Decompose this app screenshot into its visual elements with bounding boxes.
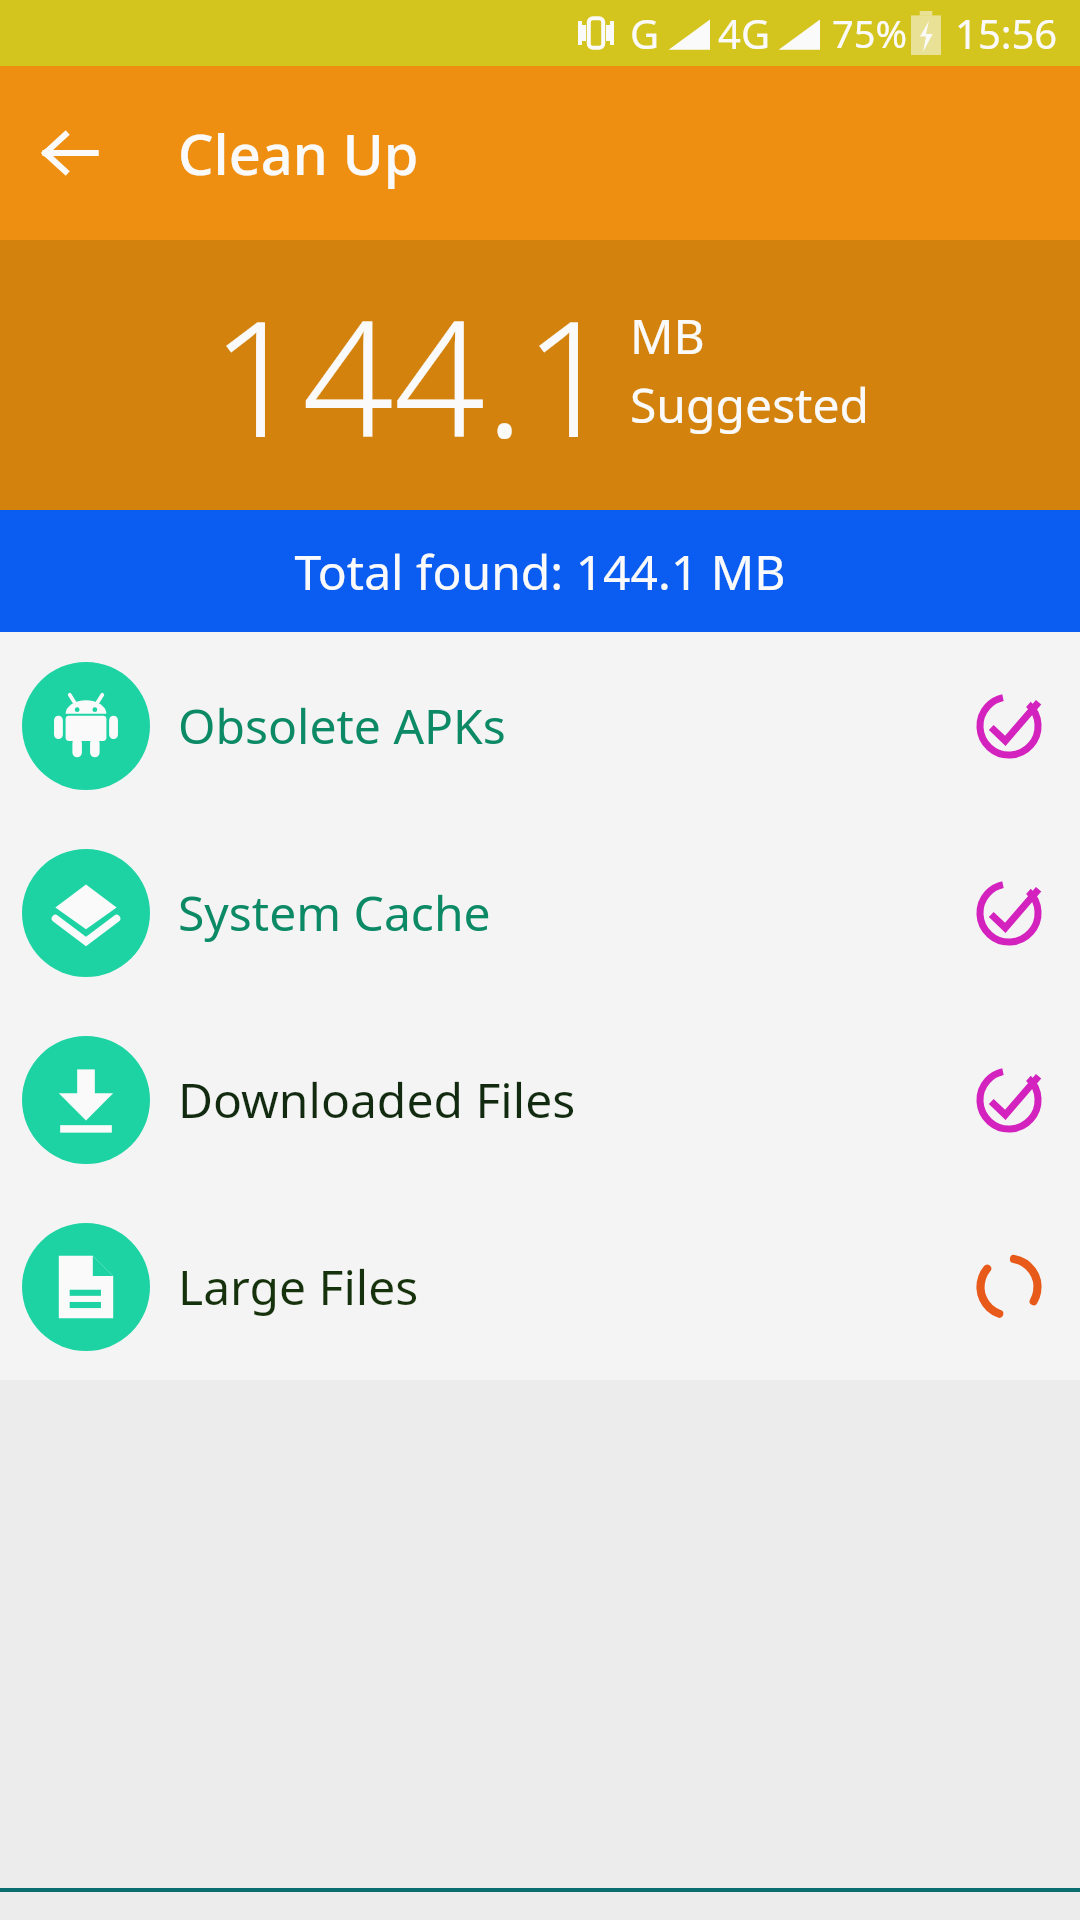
staticText: Large Files xyxy=(178,1254,419,1319)
staticText: 4G xyxy=(718,6,770,60)
staticText: System Cache xyxy=(178,880,491,945)
staticText: Clean Up xyxy=(178,115,419,191)
staticText: 15:56 xyxy=(955,6,1058,60)
staticText: 144.1 xyxy=(211,266,616,484)
staticText: Total found: 144.1 MB xyxy=(294,539,786,604)
staticText: Suggested xyxy=(630,372,870,437)
button[interactable]: Obsolete APKs xyxy=(0,632,1080,819)
button[interactable]: Large Files xyxy=(0,1193,1080,1380)
staticText: G xyxy=(630,6,660,60)
button[interactable]: Downloaded Files xyxy=(0,1006,1080,1193)
staticText: Obsolete APKs xyxy=(178,693,506,758)
staticText: Downloaded Files xyxy=(178,1067,576,1132)
button[interactable]: Total found: 144.1 MB xyxy=(0,510,1080,632)
staticText: MB xyxy=(630,303,705,368)
button[interactable]: Back xyxy=(22,105,118,201)
button[interactable]: System Cache xyxy=(0,819,1080,1006)
staticText: 75% xyxy=(832,7,908,59)
